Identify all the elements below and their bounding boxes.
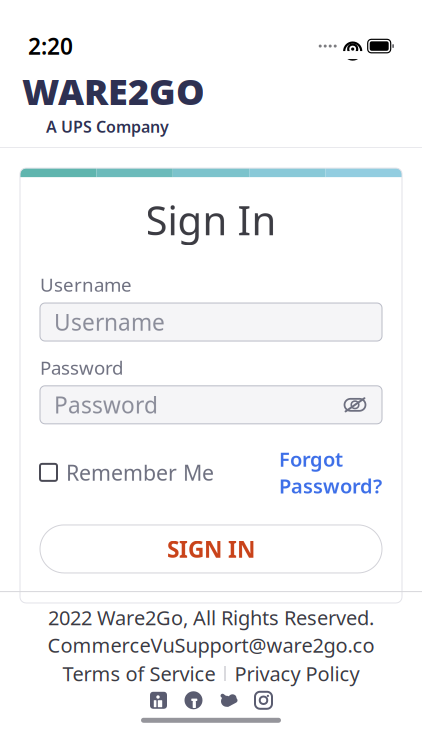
button[interactable]: Privacy Policy [234,660,359,687]
staticText: 2:20 [28,31,73,61]
staticText: Username [54,307,165,337]
button[interactable]: Terms of Service [62,660,215,687]
staticText: Terms of Service [62,660,215,687]
staticText: CommerceVuSupport@ware2go.co [47,632,374,658]
button[interactable]: Forgot Password? [279,446,382,499]
staticText: Forgot Password? [279,446,382,499]
button[interactable]: Instagram [254,691,273,710]
button[interactable]: Twitter [219,691,238,710]
staticText: Privacy Policy [234,660,359,687]
staticText: WARE2GO [22,67,205,115]
button[interactable]: SIGN IN [40,525,382,573]
staticText: Password [40,355,123,380]
staticText: Sign In [145,193,276,246]
staticText: 2022 Ware2Go, All Rights Reserved. [48,604,374,631]
button[interactable]: LinkedIn [149,691,168,710]
button[interactable]: Password [40,386,382,424]
staticText: A UPS Company [46,116,169,137]
staticText: Password [54,390,158,420]
staticText: Username [40,272,132,297]
staticText: SIGN IN [167,534,255,564]
button[interactable]: Username [40,303,382,341]
staticText: Remember Me [66,458,214,486]
button[interactable]: Facebook [184,691,203,710]
button[interactable]: Remember Me [40,458,214,486]
